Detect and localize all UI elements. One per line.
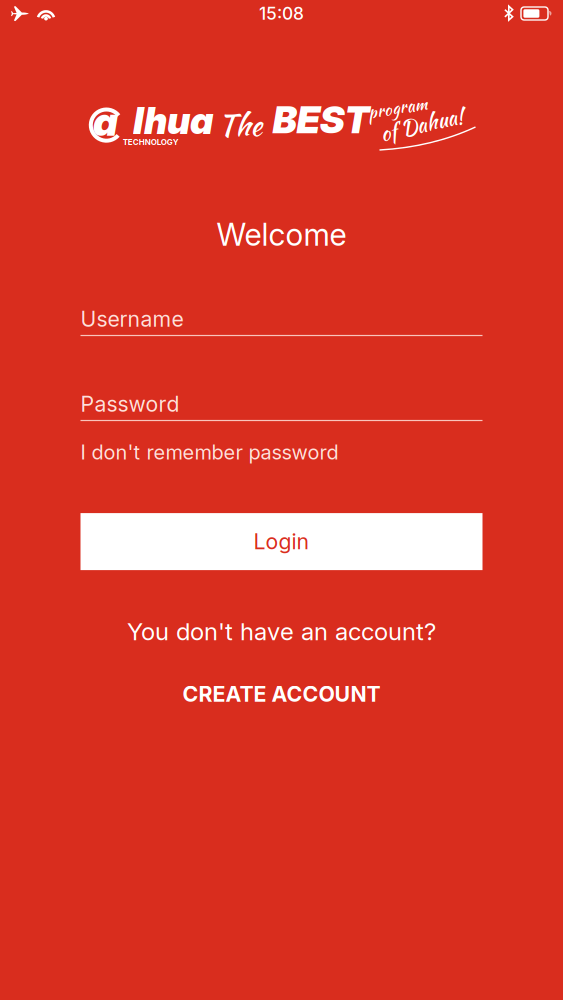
staticText: You don't have an account? — [127, 617, 436, 646]
staticText: Password — [80, 391, 179, 417]
staticText: a — [93, 97, 118, 145]
staticText: Welcome — [216, 216, 346, 253]
button[interactable]: Login — [80, 513, 482, 570]
staticText: of Dahua! — [379, 109, 463, 140]
staticText: Username — [80, 306, 183, 332]
staticText: 15:08 — [259, 3, 304, 24]
button[interactable]: CREATE ACCOUNT — [182, 681, 380, 707]
staticText: CREATE ACCOUNT — [182, 681, 380, 707]
staticText: Login — [253, 529, 309, 554]
staticText: lhua — [133, 98, 213, 143]
staticText: TECHNOLOGY — [123, 137, 179, 147]
staticText: BEST — [272, 97, 369, 142]
staticText: I don't remember password — [80, 440, 338, 464]
staticText: program — [367, 95, 427, 120]
button[interactable]: I don't remember password — [80, 436, 482, 468]
staticText: The — [218, 104, 262, 147]
